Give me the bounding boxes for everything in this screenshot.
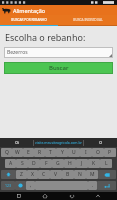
button[interactable]: Oi	[0, 138, 33, 147]
staticText: M	[90, 171, 95, 178]
other: Shift	[6, 172, 11, 177]
button[interactable]: U	[68, 148, 80, 157]
button[interactable]: P	[104, 148, 116, 157]
button[interactable]: Recent apps	[12, 192, 26, 200]
staticText: B	[66, 171, 70, 178]
button[interactable]: W	[12, 148, 23, 157]
staticText: Oi	[15, 140, 19, 145]
button[interactable]: K	[88, 159, 100, 168]
staticText: .	[92, 182, 94, 189]
button[interactable]: Q	[1, 148, 12, 157]
button[interactable]: V	[50, 170, 62, 179]
other: Enter	[104, 183, 110, 189]
staticText: ,	[30, 182, 32, 189]
button[interactable]: M	[86, 170, 98, 179]
staticText: P	[108, 149, 112, 156]
staticText: G	[56, 160, 60, 167]
staticText: J	[81, 160, 83, 167]
staticText: K	[92, 160, 96, 167]
staticText: N	[78, 171, 82, 178]
staticText: Buscar	[49, 64, 69, 72]
staticText: L	[105, 160, 108, 167]
staticText: Q	[5, 149, 9, 156]
button[interactable]: Back	[65, 192, 79, 200]
button[interactable]: F	[40, 159, 52, 168]
button[interactable]: J	[76, 159, 88, 168]
button[interactable]: D	[28, 159, 40, 168]
staticText: O	[99, 140, 102, 145]
button[interactable]: ,	[26, 181, 35, 190]
button[interactable]: X	[27, 170, 38, 179]
button[interactable]: L	[100, 159, 112, 168]
staticText: Bezerros	[7, 49, 28, 56]
staticText: W	[15, 149, 20, 156]
button[interactable]: R	[34, 148, 45, 157]
staticText: H	[68, 160, 72, 167]
staticText: BUSCAR POR REBANHO	[11, 18, 47, 22]
staticText: F	[45, 160, 48, 167]
staticText: BUSCA INDIVIDUAL	[73, 18, 103, 22]
staticText: E	[27, 149, 30, 156]
staticText: C	[42, 171, 46, 178]
staticText: 123	[5, 183, 12, 188]
button[interactable]: Shift	[1, 170, 16, 179]
button[interactable]: visite.meusiteagricola.com.br	[34, 138, 83, 147]
staticText: O	[96, 149, 100, 156]
staticText: I	[85, 149, 87, 156]
button[interactable]: Bezerros	[4, 47, 113, 58]
button[interactable]: Z	[16, 170, 27, 179]
button[interactable]: Backspace	[98, 170, 116, 179]
button[interactable]: Change keyboard language	[15, 181, 26, 190]
button[interactable]: Buscar	[4, 62, 113, 74]
other: App logo	[2, 6, 11, 15]
staticText: Alimentação	[13, 7, 46, 14]
button[interactable]: G	[52, 159, 64, 168]
button[interactable]: S	[16, 159, 28, 168]
button[interactable]: T	[45, 148, 56, 157]
button[interactable]: H	[64, 159, 76, 168]
staticText: T	[49, 149, 52, 156]
staticText: X	[31, 171, 34, 178]
staticText: D	[32, 160, 36, 167]
staticText: S	[21, 160, 24, 167]
button[interactable]: .	[88, 181, 97, 190]
button[interactable]: Home	[38, 192, 52, 200]
button[interactable]: E	[23, 148, 34, 157]
staticText: Escolha o rebanho:	[5, 31, 86, 43]
staticText: visite.meusiteagricola.com.br	[35, 140, 82, 145]
staticText: V	[54, 171, 58, 178]
staticText: A	[9, 160, 13, 167]
button[interactable]: O	[92, 148, 104, 157]
staticText: U	[72, 149, 76, 156]
button[interactable]: A	[5, 159, 16, 168]
button[interactable]: O	[84, 138, 117, 147]
button[interactable]: BUSCA INDIVIDUAL	[58, 15, 117, 26]
button[interactable]: Y	[56, 148, 68, 157]
button[interactable]: BUSCAR POR REBANHO	[0, 15, 58, 26]
button[interactable]: B	[62, 170, 74, 179]
button[interactable]: Hide keyboard	[91, 192, 105, 200]
staticText: Z	[20, 171, 23, 178]
other: Change keyboard language	[18, 183, 23, 188]
other: Backspace	[104, 172, 110, 178]
button[interactable]: Enter	[97, 181, 116, 190]
button[interactable]: 123	[1, 181, 15, 190]
button[interactable]: N	[74, 170, 86, 179]
button[interactable]: I	[80, 148, 92, 157]
staticText: R	[38, 149, 42, 156]
staticText: Y	[61, 149, 64, 156]
button[interactable]: C	[38, 170, 50, 179]
